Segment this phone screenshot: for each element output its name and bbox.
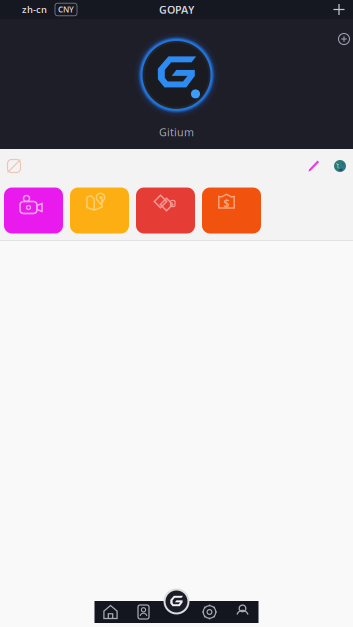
button[interactable]: Live video [4, 187, 63, 233]
button[interactable]: Cards [127, 601, 160, 623]
button[interactable]: Edit [304, 155, 324, 177]
button[interactable]: Status [4, 155, 24, 177]
staticText: Gitium [159, 125, 194, 139]
staticText: GOPAY [159, 2, 194, 17]
button[interactable]: Rewards [202, 187, 261, 233]
button[interactable]: Language [330, 155, 350, 177]
button[interactable]: Chat [136, 187, 195, 233]
button[interactable]: Settings [193, 601, 226, 623]
button[interactable]: Add account [336, 31, 352, 47]
button[interactable]: Nearby [70, 187, 129, 233]
staticText: CNY [58, 4, 74, 15]
button[interactable]: Home [94, 601, 127, 623]
staticText: zh-cn [22, 3, 47, 16]
button[interactable]: Pay [162, 587, 190, 615]
button[interactable]: CNY [55, 3, 77, 16]
button[interactable]: Profile [226, 601, 259, 623]
staticText: $ [223, 195, 229, 210]
button[interactable]: Add [331, 1, 347, 17]
